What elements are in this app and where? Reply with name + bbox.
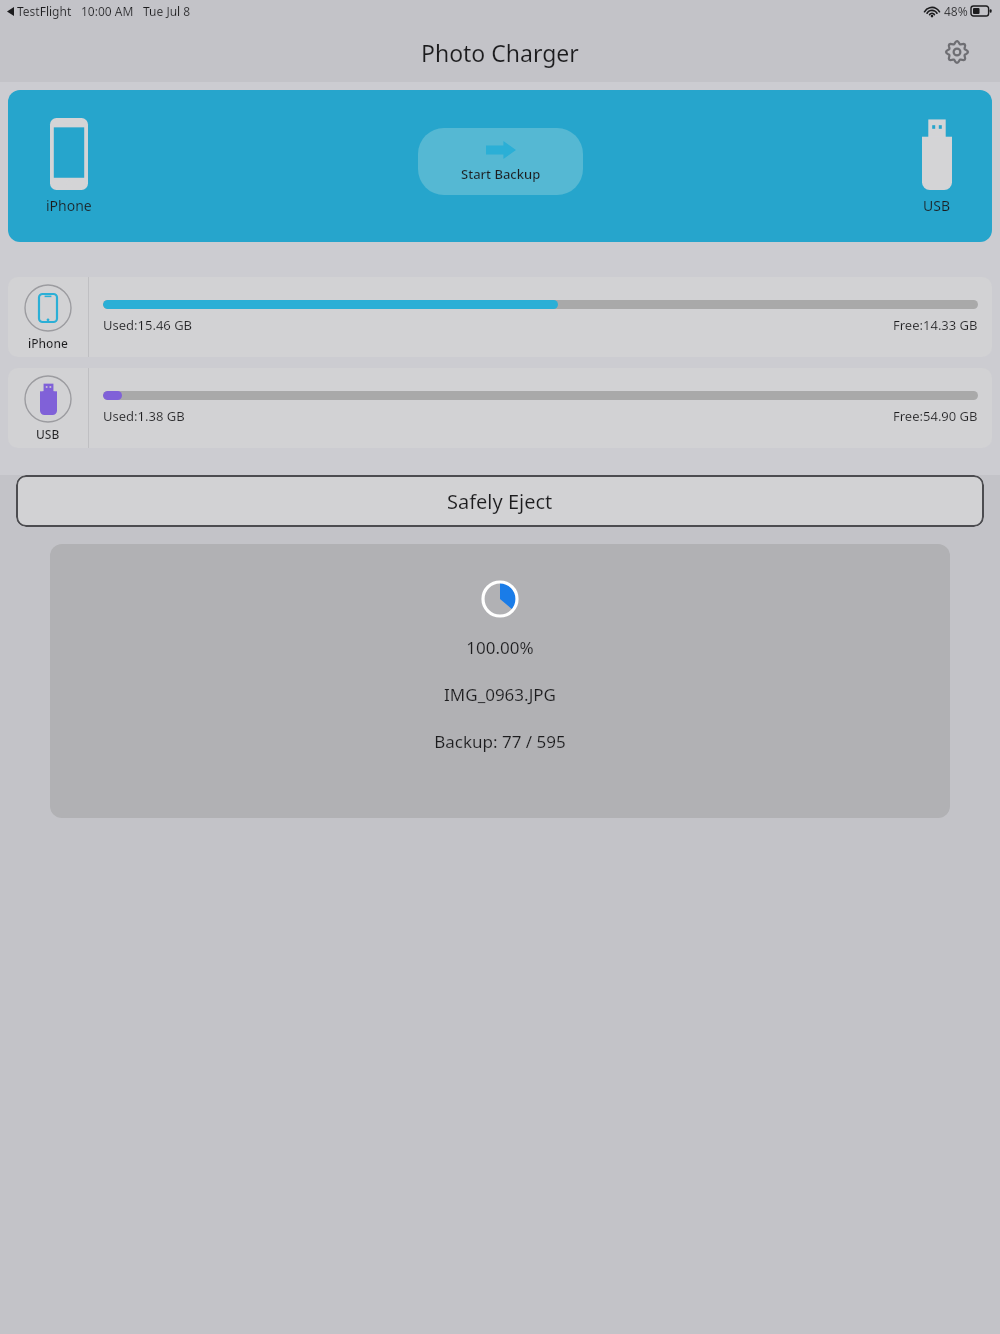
staticText: Used:1.38 GB: [103, 407, 185, 425]
staticText: Photo Charger: [421, 37, 579, 68]
button[interactable]: iPhone: [8, 277, 992, 357]
staticText: Safely Eject: [447, 488, 553, 515]
staticText: USB: [923, 196, 951, 215]
staticText: Free:54.90 GB: [893, 407, 978, 425]
staticText: Tue Jul 8: [143, 3, 191, 19]
staticText: iPhone: [28, 335, 68, 351]
staticText: iPhone: [46, 196, 92, 215]
staticText: USB: [36, 426, 60, 442]
button[interactable]: USB: [8, 368, 992, 448]
staticText: TestFlight: [17, 3, 72, 19]
staticText: Backup: 77 / 595: [434, 730, 566, 753]
staticText: Used:15.46 GB: [103, 316, 193, 334]
staticText: 100.00%: [466, 636, 534, 659]
staticText: Start Backup: [461, 165, 541, 183]
button[interactable]: Settings: [940, 35, 974, 69]
button[interactable]: Safely Eject: [16, 475, 984, 527]
staticText: 48%: [944, 3, 968, 19]
staticText: IMG_0963.JPG: [444, 683, 556, 706]
staticText: 10:00 AM: [81, 3, 134, 19]
staticText: Free:14.33 GB: [893, 316, 978, 334]
button[interactable]: Start Backup: [418, 128, 583, 195]
